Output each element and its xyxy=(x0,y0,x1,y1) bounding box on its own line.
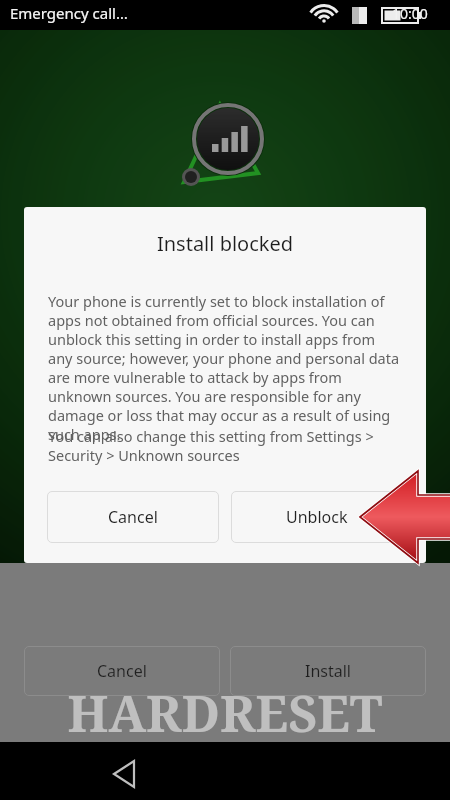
other: Pointer arrow xyxy=(0,0,450,800)
staticText: Cancel xyxy=(108,506,158,528)
staticText: Unblock xyxy=(286,506,348,528)
staticText: Install blocked xyxy=(24,230,426,257)
staticText: 10:00 xyxy=(392,4,428,23)
button[interactable]: Cancel xyxy=(47,491,219,543)
button[interactable]: Unblock xyxy=(231,491,403,543)
staticText: Cancel xyxy=(97,660,147,682)
staticText: Your phone is currently set to block ins… xyxy=(48,291,402,444)
staticText: Install xyxy=(305,660,351,682)
button[interactable]: Cancel xyxy=(24,646,220,696)
button[interactable]: Back xyxy=(100,748,152,800)
staticText: Emergency call… xyxy=(10,3,128,23)
staticText: HARDRESET xyxy=(12,679,438,747)
button[interactable]: Install xyxy=(230,646,426,696)
staticText: You can also change this setting from Se… xyxy=(48,426,402,465)
